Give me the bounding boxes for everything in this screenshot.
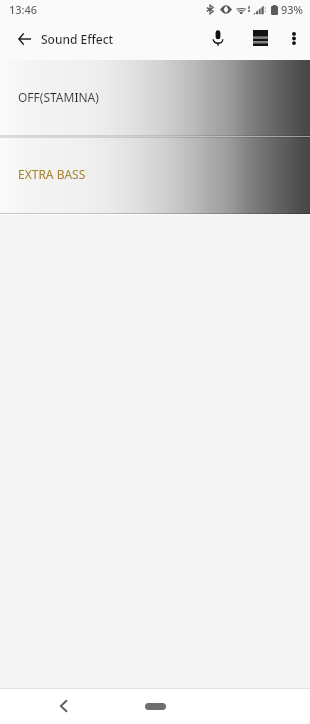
button[interactable]: Voice search xyxy=(200,20,236,56)
button[interactable]: More options xyxy=(276,20,310,56)
button[interactable]: Back xyxy=(10,25,38,53)
button[interactable]: Equalizer xyxy=(242,20,278,56)
staticText: 13:46 xyxy=(9,2,38,17)
button[interactable]: EXTRA BASS xyxy=(0,137,310,215)
staticText: Sound Effect xyxy=(41,31,114,47)
staticText: OFF(STAMINA) xyxy=(18,89,99,105)
button[interactable]: OFF(STAMINA) xyxy=(0,60,310,137)
staticText: EXTRA BASS xyxy=(18,166,86,182)
button[interactable]: Back xyxy=(51,694,75,718)
button[interactable]: Home xyxy=(145,703,166,710)
staticText: 93% xyxy=(281,2,303,17)
